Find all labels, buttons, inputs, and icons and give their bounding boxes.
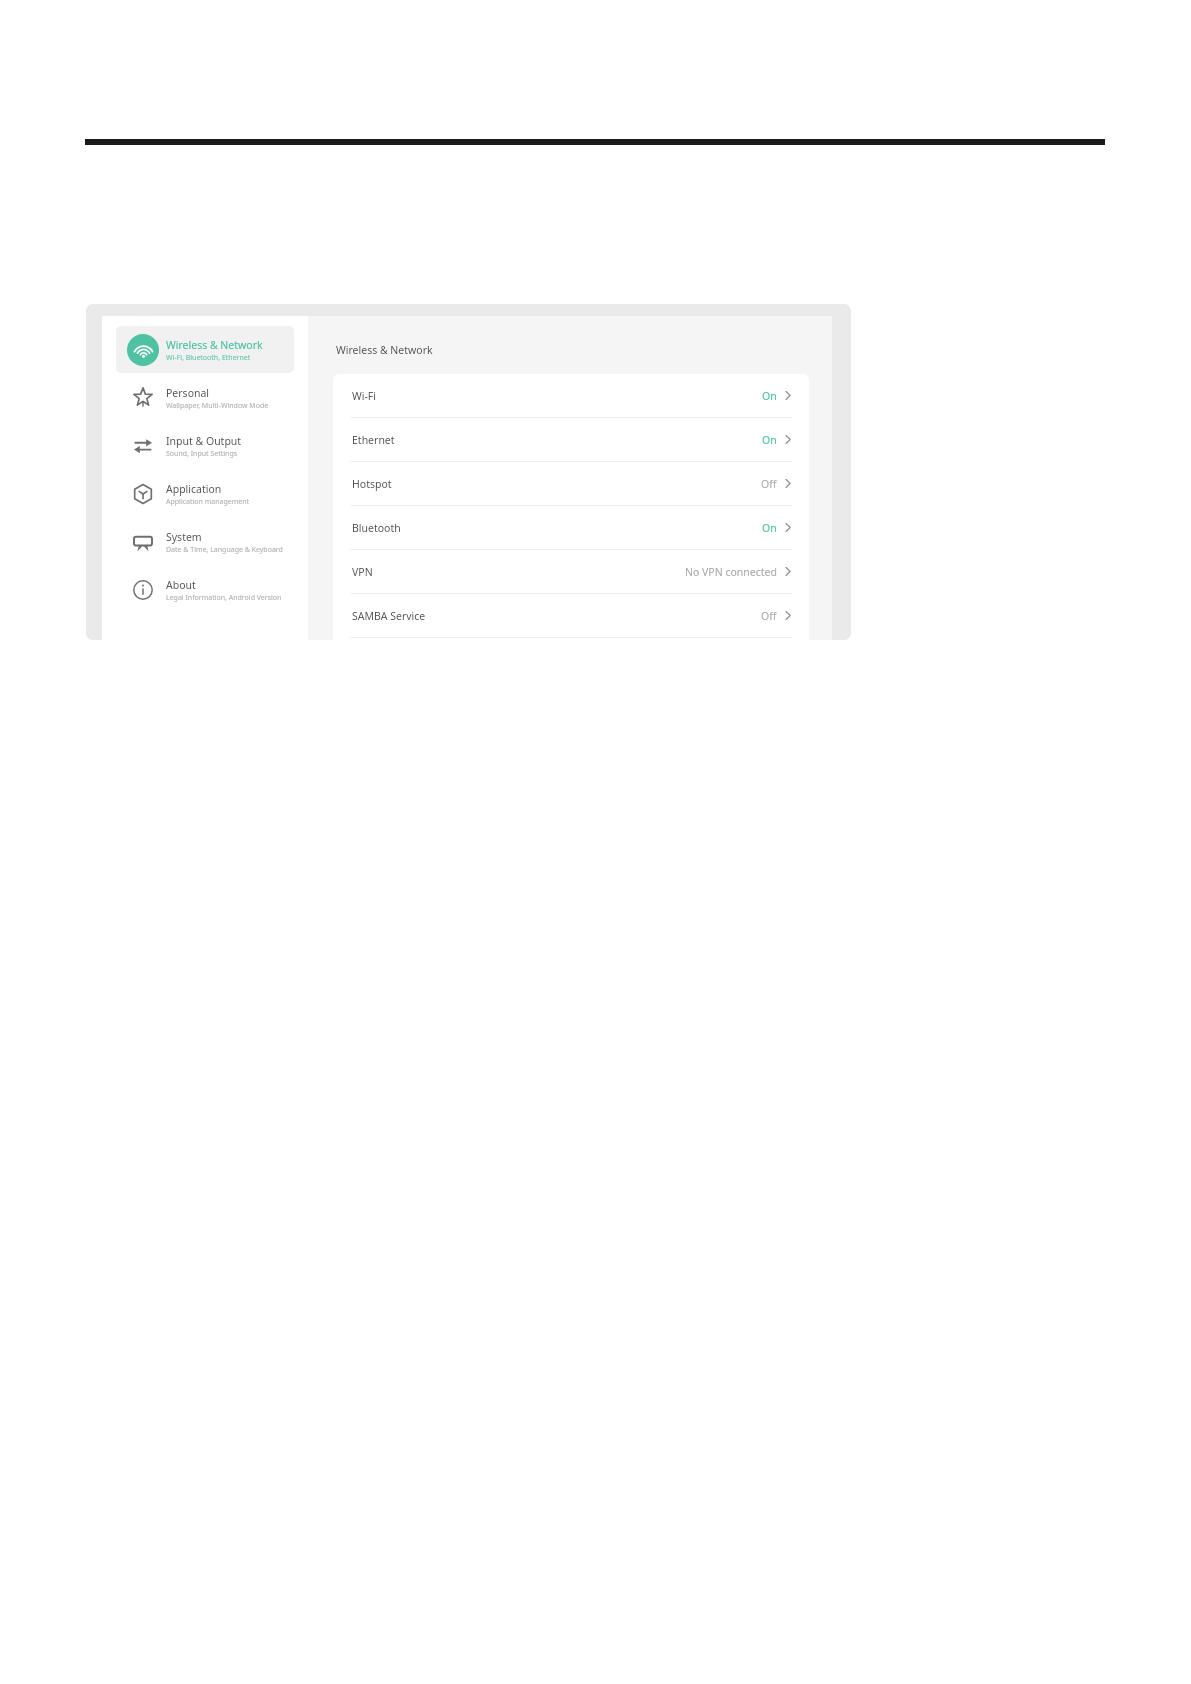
button[interactable]: Input & Output: [116, 422, 294, 469]
other: Open: [785, 479, 791, 488]
staticText: Off: [761, 609, 777, 623]
staticText: Hotspot: [352, 477, 392, 491]
staticText: Wireless & Network: [336, 343, 433, 357]
button[interactable]: Application: [116, 470, 294, 517]
other: Open: [785, 391, 791, 400]
button[interactable]: VPN: [333, 550, 809, 593]
staticText: On: [762, 389, 777, 403]
button[interactable]: Personal: [116, 374, 294, 421]
staticText: Personal: [166, 386, 210, 400]
staticText: On: [762, 521, 777, 535]
staticText: Legal Information, Android Version: [166, 593, 282, 603]
staticText: Bluetooth: [352, 521, 401, 535]
staticText: Off: [761, 477, 777, 491]
staticText: Input & Output: [166, 434, 242, 448]
staticText: VPN: [352, 565, 373, 579]
button[interactable]: Ethernet: [333, 418, 809, 461]
button[interactable]: About: [116, 566, 294, 613]
button[interactable]: Wireless & Network: [116, 326, 294, 373]
staticText: Sound, Input Settings: [166, 449, 238, 459]
staticText: On: [762, 433, 777, 447]
staticText: No VPN connected: [685, 565, 777, 579]
staticText: System: [166, 530, 202, 544]
button[interactable]: Wi-Fi: [333, 374, 809, 417]
button[interactable]: Hotspot: [333, 462, 809, 505]
staticText: Wallpaper, Multi-Window Mode: [166, 401, 269, 411]
other: Open: [785, 611, 791, 620]
staticText: Application management: [166, 497, 250, 507]
other: Open: [785, 523, 791, 532]
staticText: Wireless & Network: [166, 338, 263, 352]
button[interactable]: System: [116, 518, 294, 565]
button[interactable]: SAMBA Service: [333, 594, 809, 637]
staticText: SAMBA Service: [352, 609, 426, 623]
staticText: Wi-Fi: [352, 389, 377, 403]
staticText: Wi-Fi, Bluetooth, Ethernet: [166, 353, 251, 363]
staticText: Date & Time, Language & Keyboard: [166, 545, 283, 555]
staticText: About: [166, 578, 196, 592]
staticText: Ethernet: [352, 433, 395, 447]
other: Open: [785, 435, 791, 444]
other: Open: [785, 567, 791, 576]
staticText: Application: [166, 482, 222, 496]
button[interactable]: Bluetooth: [333, 506, 809, 549]
